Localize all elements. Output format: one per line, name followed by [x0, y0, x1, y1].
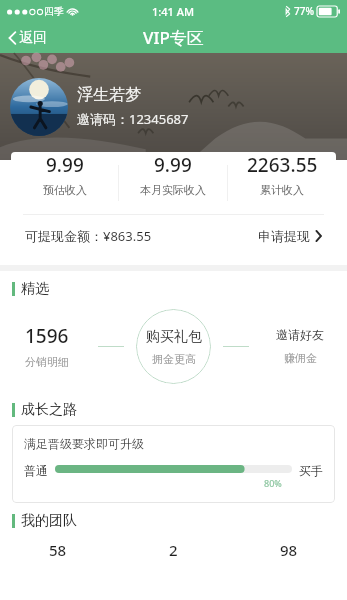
button[interactable]: 1596 [8, 323, 86, 369]
button[interactable]: 2 [115, 540, 231, 560]
staticText: 返回 [19, 29, 47, 47]
staticText: 77% [294, 4, 314, 18]
staticText: 满足晋级要求即可升级 [24, 436, 144, 451]
button[interactable]: 返回 [0, 25, 57, 51]
staticText: 普通 [24, 463, 48, 478]
button[interactable]: 9.99 [11, 152, 118, 197]
staticText: 1596 [25, 323, 69, 349]
staticText: 58 [49, 540, 67, 560]
button[interactable]: 58 [0, 540, 115, 560]
staticText: 四季 [44, 5, 64, 18]
staticText: 80% [264, 477, 282, 489]
staticText: 浮生若梦 [77, 85, 141, 105]
staticText: 赚佣金 [284, 351, 317, 365]
button[interactable]: 9.99 [119, 152, 227, 197]
staticText: 累计收入 [260, 183, 304, 197]
staticText: 98 [280, 540, 298, 560]
staticText: 2 [169, 540, 178, 560]
staticText: 邀请码：12345687 [77, 110, 189, 128]
staticText: 2263.55 [247, 152, 318, 178]
staticText: 拥金更高 [152, 352, 196, 366]
staticText: 分销明细 [25, 355, 69, 369]
staticText: 申请提现 [258, 228, 310, 244]
button[interactable]: 2263.55 [228, 152, 336, 197]
button[interactable]: Avatar [10, 78, 68, 136]
staticText: 可提现金额：¥863.55 [25, 227, 152, 245]
button[interactable]: 可提现金额：¥863.55 [11, 215, 336, 257]
button[interactable]: 邀请好友 [261, 327, 339, 365]
staticText: 1:41 AM [152, 4, 195, 19]
staticText: 买手 [299, 463, 323, 478]
staticText: 我的团队 [21, 512, 77, 530]
button[interactable]: 购买礼包 [136, 309, 211, 384]
staticText: 9.99 [46, 152, 84, 178]
staticText: 精选 [21, 280, 49, 298]
button[interactable]: 满足晋级要求即可升级 [12, 425, 335, 503]
staticText: 成长之路 [21, 401, 77, 419]
button[interactable]: 98 [231, 540, 347, 560]
staticText: 预估收入 [43, 183, 87, 197]
staticText: 本月实际收入 [140, 183, 206, 197]
staticText: VIP专区 [143, 26, 204, 49]
staticText: 购买礼包 [146, 328, 202, 346]
staticText: 9.99 [154, 152, 192, 178]
staticText: 邀请好友 [276, 327, 324, 342]
